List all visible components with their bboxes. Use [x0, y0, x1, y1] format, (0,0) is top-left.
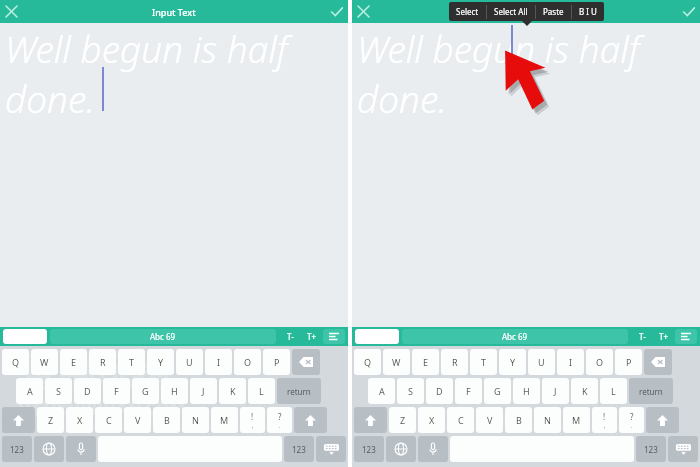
button[interactable]: Close	[0, 0, 23, 23]
button[interactable]: M	[563, 407, 590, 433]
button[interactable]: T	[470, 349, 497, 375]
button[interactable]: Select All	[487, 2, 535, 21]
button[interactable]: G	[132, 378, 159, 404]
button[interactable]: Voice input	[66, 436, 96, 462]
button[interactable]: U	[528, 349, 555, 375]
button[interactable]: T	[118, 349, 145, 375]
button[interactable]: T+	[653, 327, 675, 346]
button[interactable]: Backspace	[644, 349, 672, 375]
button[interactable]: L	[600, 378, 627, 404]
staticText: J	[554, 385, 557, 397]
button[interactable]: I	[557, 349, 584, 375]
button[interactable]: return	[277, 378, 321, 404]
button[interactable]: !	[592, 407, 617, 433]
button[interactable]: Q	[354, 349, 381, 375]
button[interactable]: Options	[675, 329, 697, 344]
button[interactable]: Hide keyboard	[316, 436, 346, 462]
button[interactable]: Done	[677, 0, 700, 23]
button[interactable]: T+	[301, 327, 323, 346]
button[interactable]: R	[89, 349, 116, 375]
button[interactable]: U	[176, 349, 203, 375]
button[interactable]: F	[455, 378, 482, 404]
button[interactable]: Shift	[294, 407, 327, 433]
button[interactable]: Select	[449, 2, 486, 21]
button[interactable]: Options	[323, 329, 345, 344]
button[interactable]: P	[615, 349, 642, 375]
button[interactable]: B I U	[572, 2, 604, 21]
button[interactable]: W	[31, 349, 58, 375]
button[interactable]: A	[16, 378, 43, 404]
button[interactable]: N	[534, 407, 561, 433]
button[interactable]	[355, 329, 399, 344]
button[interactable]: J	[542, 378, 569, 404]
button[interactable]: Z	[389, 407, 416, 433]
button[interactable]: K	[571, 378, 598, 404]
staticText: T+	[659, 331, 669, 342]
button[interactable]: D	[426, 378, 453, 404]
button[interactable]: D	[74, 378, 101, 404]
button[interactable]: Z	[37, 407, 64, 433]
staticText: !	[603, 411, 606, 422]
button[interactable]: Backspace	[292, 349, 320, 375]
button[interactable]: 123	[636, 436, 666, 462]
button[interactable]: V	[124, 407, 151, 433]
button[interactable]: Hide keyboard	[668, 436, 698, 462]
button[interactable]: W	[383, 349, 410, 375]
button[interactable]: M	[211, 407, 238, 433]
button[interactable]: 123	[2, 436, 32, 462]
button[interactable]: V	[476, 407, 503, 433]
button[interactable]: return	[629, 378, 673, 404]
button[interactable]: 123	[354, 436, 384, 462]
button[interactable]: F	[103, 378, 130, 404]
button[interactable]: Y	[147, 349, 174, 375]
button[interactable]: L	[248, 378, 275, 404]
button[interactable]: K	[219, 378, 246, 404]
button[interactable]: !	[240, 407, 265, 433]
button[interactable]: B	[153, 407, 180, 433]
button[interactable]: Shift	[354, 407, 387, 433]
button[interactable]: J	[190, 378, 217, 404]
button[interactable]: Shift	[646, 407, 679, 433]
button[interactable]: T-	[631, 327, 653, 346]
button[interactable]: Close	[352, 0, 375, 23]
button[interactable]: C	[95, 407, 122, 433]
button[interactable]: 123	[284, 436, 314, 462]
button[interactable]: X	[418, 407, 445, 433]
button[interactable]: S	[397, 378, 424, 404]
button[interactable]	[3, 329, 47, 344]
button[interactable]: O	[586, 349, 613, 375]
button[interactable]: X	[66, 407, 93, 433]
button[interactable]: Paste	[536, 2, 571, 21]
button[interactable]: Shift	[2, 407, 35, 433]
button[interactable]: T-	[279, 327, 301, 346]
button[interactable]: B	[505, 407, 532, 433]
button[interactable]: Q	[2, 349, 29, 375]
button[interactable]: ?	[267, 407, 292, 433]
button[interactable]: Y	[499, 349, 526, 375]
button[interactable]: G	[484, 378, 511, 404]
button[interactable]: O	[234, 349, 261, 375]
staticText: Y	[510, 356, 516, 368]
button[interactable]: Language	[34, 436, 64, 462]
button[interactable]: N	[182, 407, 209, 433]
button[interactable]: Voice input	[418, 436, 448, 462]
button[interactable]: S	[45, 378, 72, 404]
button[interactable]: E	[412, 349, 439, 375]
button[interactable]: A	[368, 378, 395, 404]
button[interactable]: Abc 69	[50, 329, 276, 344]
button[interactable]: P	[263, 349, 290, 375]
button[interactable]: I	[205, 349, 232, 375]
staticText: M	[572, 414, 581, 426]
button[interactable]: H	[161, 378, 188, 404]
button[interactable]: H	[513, 378, 540, 404]
button[interactable]: Done	[325, 0, 348, 23]
button[interactable]: Language	[386, 436, 416, 462]
button[interactable]: C	[447, 407, 474, 433]
staticText: X	[429, 414, 435, 426]
button[interactable]: R	[441, 349, 468, 375]
button[interactable]: ?	[619, 407, 644, 433]
button[interactable]: Abc 69	[402, 329, 628, 344]
button[interactable]: E	[60, 349, 87, 375]
